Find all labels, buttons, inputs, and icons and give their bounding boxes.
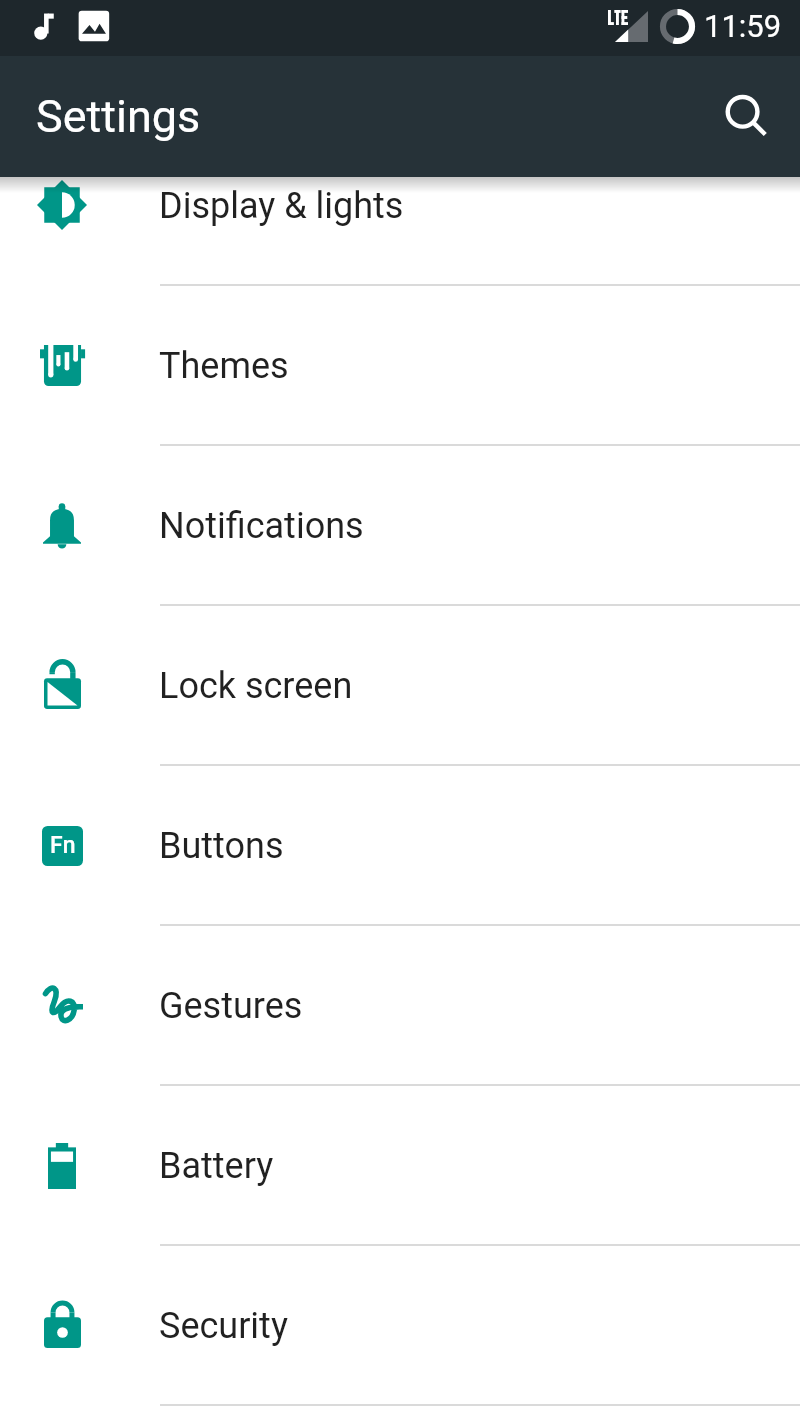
staticText: Themes (159, 345, 289, 387)
staticText: Settings (36, 90, 201, 143)
staticText: Security (159, 1305, 288, 1347)
staticText: Gestures (159, 985, 303, 1027)
staticText: Display & lights (159, 185, 404, 227)
staticText: Notifications (159, 505, 364, 547)
button[interactable]: Search (706, 78, 784, 156)
staticText: Buttons (159, 825, 284, 867)
button[interactable]: Lock screen (0, 606, 800, 766)
button[interactable]: Themes (0, 286, 800, 446)
staticText: Fn (50, 832, 76, 859)
button[interactable]: Display & lights (0, 126, 800, 286)
staticText: Lock screen (159, 665, 353, 707)
button[interactable]: Security (0, 1246, 800, 1406)
staticText: Battery (159, 1145, 274, 1187)
button[interactable]: Notifications (0, 446, 800, 606)
staticText: 11:59 (704, 8, 782, 44)
button[interactable]: Battery (0, 1086, 800, 1246)
button[interactable]: Fn (0, 766, 800, 926)
button[interactable]: Gestures (0, 926, 800, 1086)
